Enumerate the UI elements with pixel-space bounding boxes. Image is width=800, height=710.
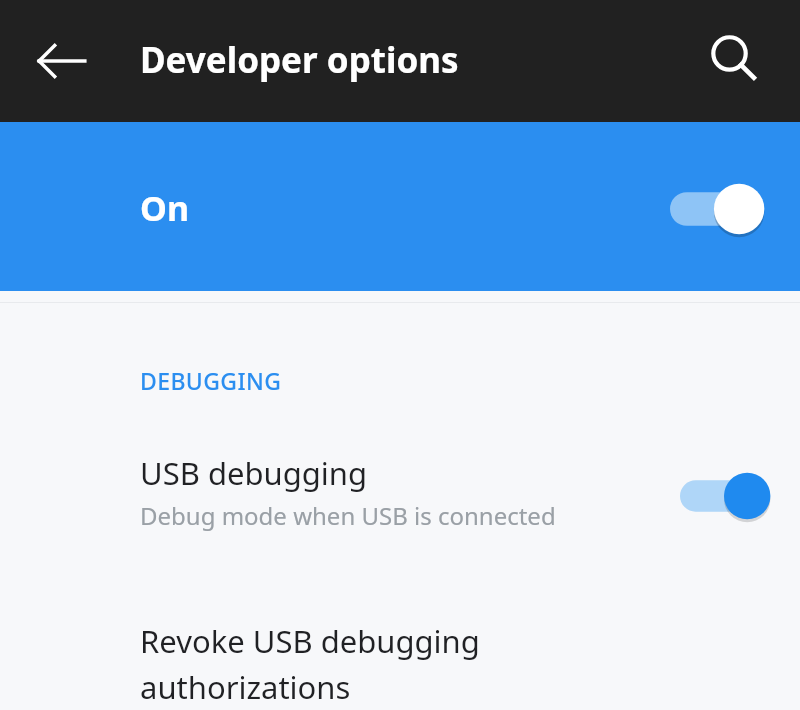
button[interactable]: On [0, 122, 800, 291]
staticText: DEBUGGING [140, 365, 282, 396]
button[interactable]: Back [14, 13, 110, 109]
staticText: authorizations [140, 666, 351, 708]
button[interactable]: Search [694, 19, 778, 103]
staticText: Debug mode when USB is connected [140, 499, 556, 532]
staticText: Revoke USB debugging [140, 620, 480, 662]
staticText: USB debugging [140, 452, 368, 494]
staticText: On [140, 185, 189, 231]
button[interactable]: Revoke USB debugging [0, 620, 800, 710]
staticText: Developer options [140, 36, 459, 84]
button[interactable]: USB debugging [0, 444, 800, 540]
